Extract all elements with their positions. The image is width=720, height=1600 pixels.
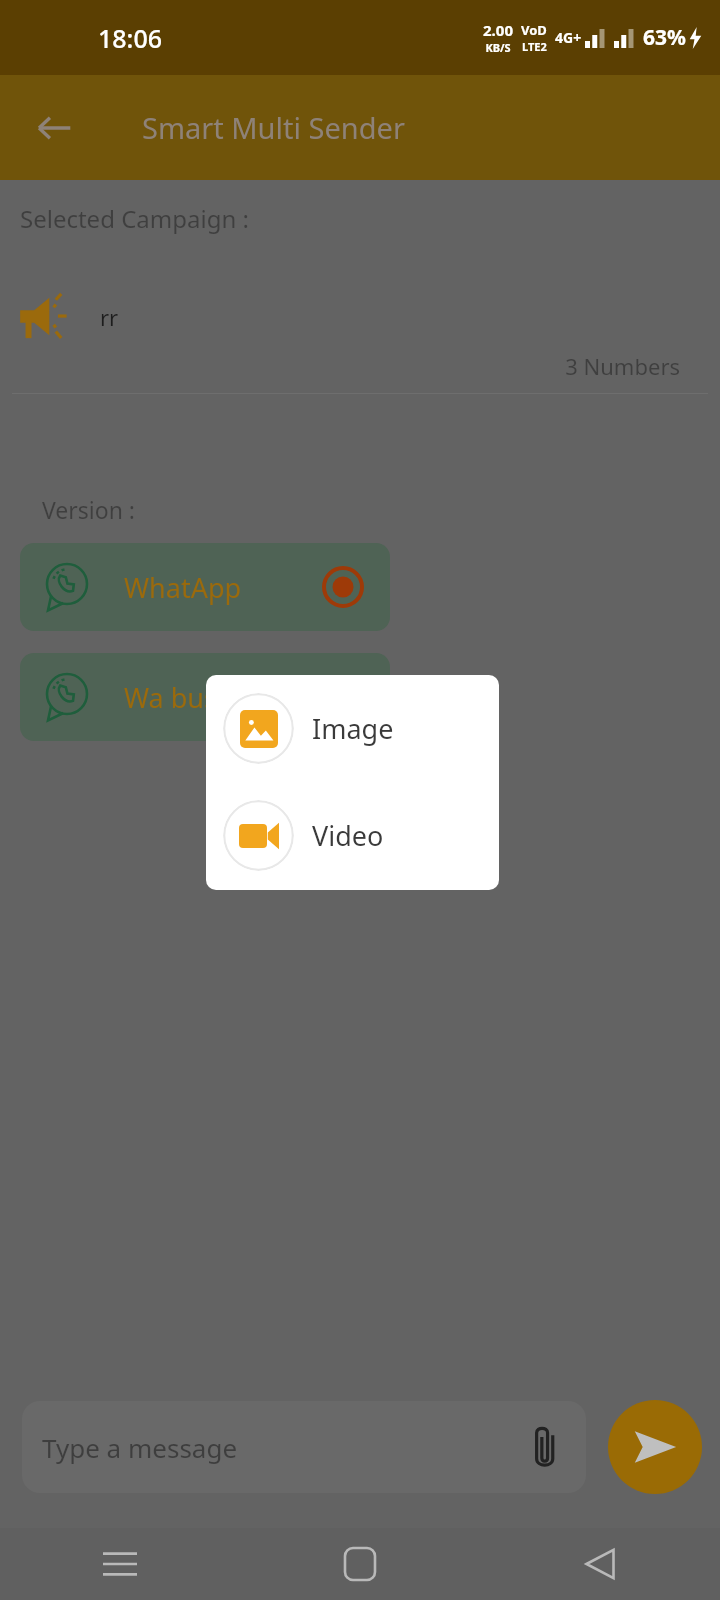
button[interactable]: Image [206, 675, 499, 782]
staticText: Type a message [42, 1430, 238, 1465]
staticText: 2.00 [483, 20, 513, 40]
staticText: Smart Multi Sender [142, 108, 405, 147]
staticText: Image [312, 710, 394, 747]
staticText: LTE2 [522, 39, 547, 54]
button[interactable]: Recents [88, 1532, 152, 1596]
staticText: Video [312, 817, 384, 854]
staticText: 4G+ [555, 28, 582, 47]
staticText: 18:06 [98, 21, 163, 55]
staticText: Selected Campaign : [20, 202, 249, 235]
staticText: Wa business [124, 679, 282, 716]
button[interactable]: Attach [518, 1419, 574, 1475]
staticText: VoD [521, 21, 547, 39]
staticText: KB/S [485, 40, 511, 55]
staticText: 63% [643, 23, 686, 52]
button[interactable]: Video [206, 782, 499, 889]
button[interactable]: Back [22, 96, 86, 160]
button[interactable]: Back [568, 1532, 632, 1596]
staticText: WhatApp [124, 569, 242, 606]
button[interactable]: Send [608, 1400, 702, 1494]
button[interactable]: WhatApp [20, 543, 390, 631]
button[interactable]: Home [328, 1532, 392, 1596]
staticText: Version : [42, 494, 136, 525]
staticText: 3 Numbers [0, 351, 680, 381]
staticText: rr [100, 302, 119, 332]
button[interactable]: Type a message [22, 1401, 586, 1493]
button[interactable]: Wa business [20, 653, 390, 741]
